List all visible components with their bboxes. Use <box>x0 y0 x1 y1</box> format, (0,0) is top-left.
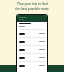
staticText: the best possible route <box>15 7 49 11</box>
button[interactable] <box>19 62 45 69</box>
button[interactable] <box>19 38 45 45</box>
button[interactable] <box>19 30 45 37</box>
staticText: Plan your trip to find <box>17 2 48 6</box>
button[interactable] <box>19 46 45 53</box>
button[interactable] <box>19 54 45 61</box>
